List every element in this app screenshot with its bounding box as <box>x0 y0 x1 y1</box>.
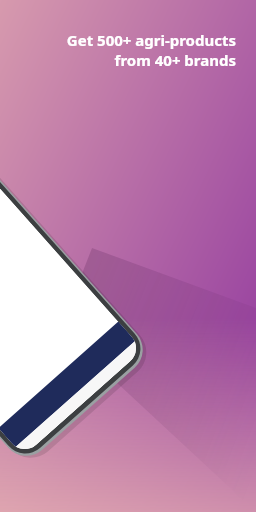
staticText: from 40+ brands <box>114 50 236 70</box>
staticText: Get 500+ agri-products <box>66 30 236 50</box>
